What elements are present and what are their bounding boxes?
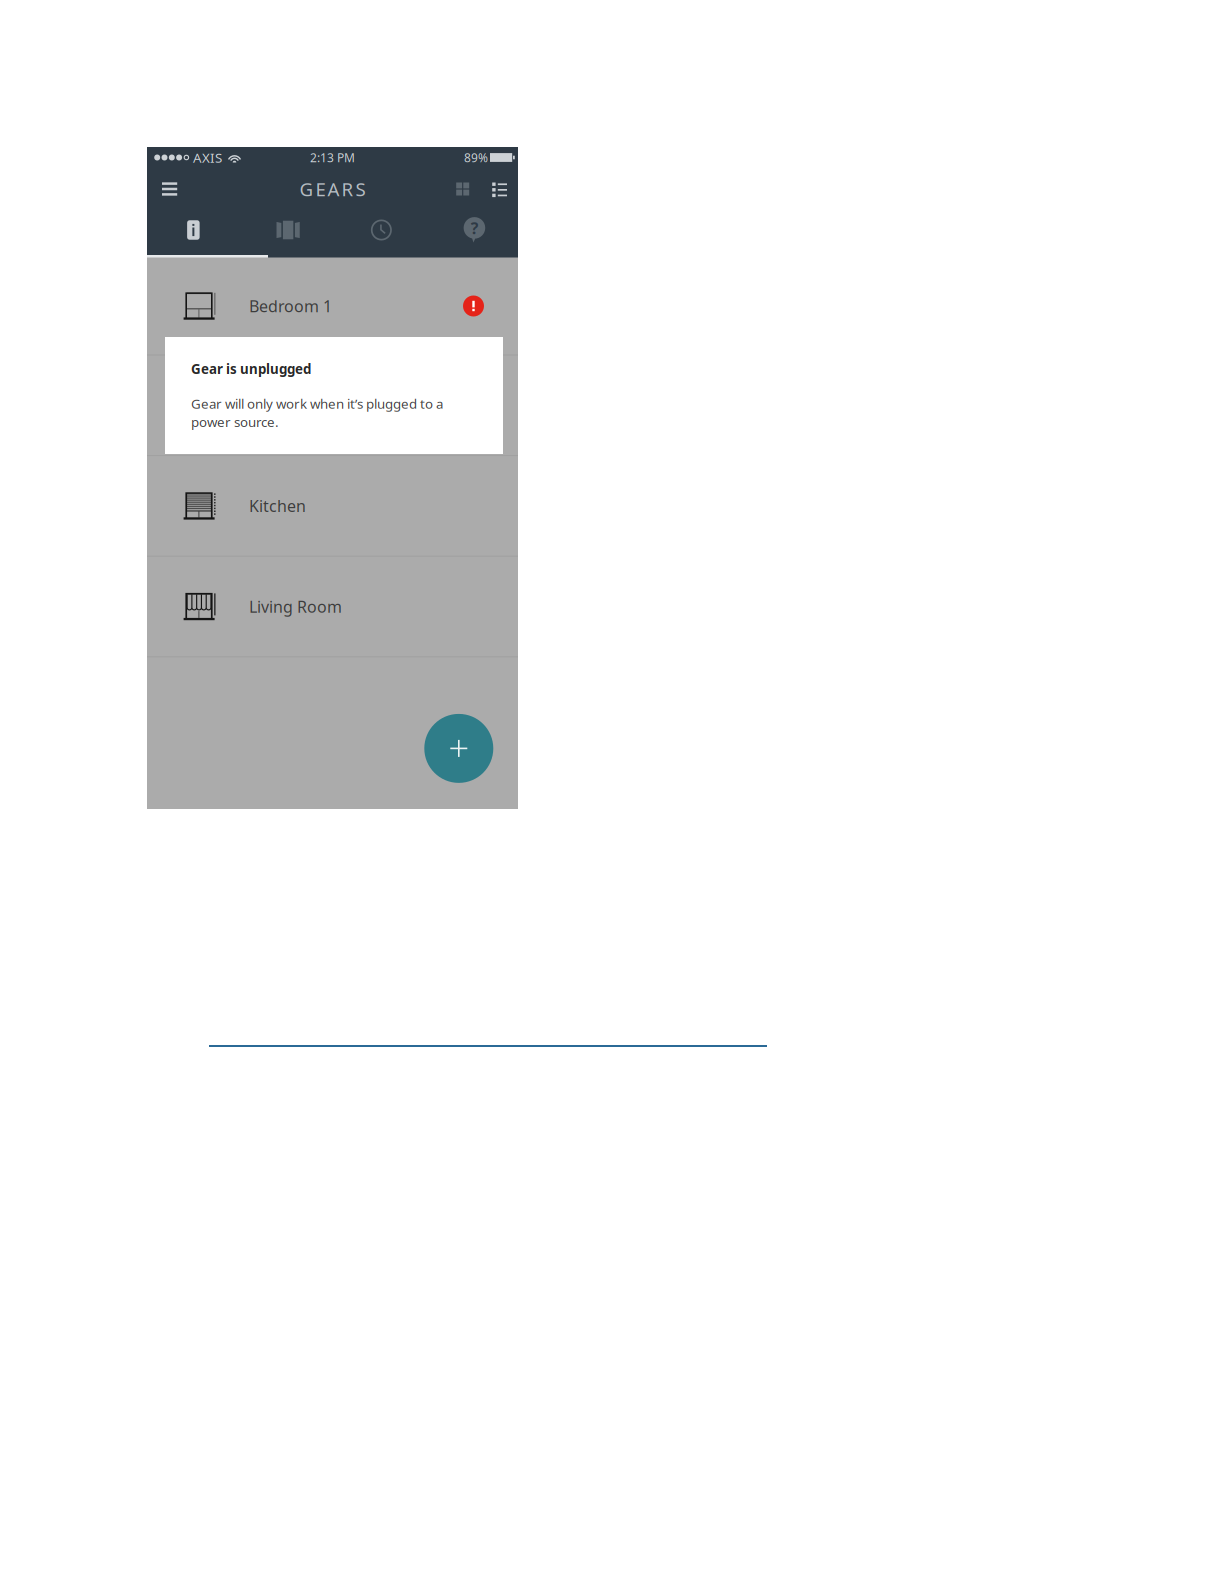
button[interactable]: Info	[147, 210, 240, 250]
staticText: G E A R S	[299, 177, 365, 201]
staticText: Bedroom 2	[249, 395, 332, 416]
staticText: 2:13 PM	[310, 149, 355, 165]
button[interactable]: Schedule	[332, 210, 425, 250]
button[interactable]: Kitchen	[147, 456, 518, 556]
staticText: 89%	[464, 149, 488, 165]
button[interactable]: Bedroom 1	[147, 257, 518, 354]
button[interactable]: Bedroom 2	[147, 355, 518, 455]
staticText: Gear will only work when it’s plugged to…	[191, 395, 443, 431]
button[interactable]: Living Room	[147, 557, 518, 656]
button[interactable]: Grid view	[456, 170, 469, 208]
button[interactable]: Menu	[162, 170, 206, 208]
button[interactable]: Panels	[240, 210, 333, 250]
staticText: Living Room	[249, 596, 342, 617]
staticText: ?	[471, 217, 479, 239]
staticText: Kitchen	[249, 495, 306, 516]
button[interactable]: Help	[425, 210, 518, 250]
button[interactable]: Add gear	[424, 714, 493, 783]
staticText: AXIS	[193, 149, 222, 166]
staticText: Bedroom 1	[249, 295, 332, 317]
staticText: Gear is unplugged	[191, 360, 311, 378]
button[interactable]: List view	[492, 170, 507, 208]
